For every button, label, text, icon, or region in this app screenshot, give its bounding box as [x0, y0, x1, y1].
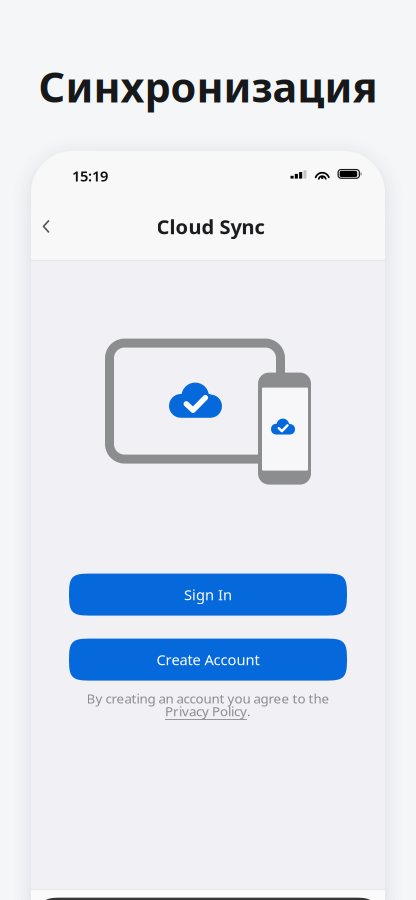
button[interactable]: Create Account [69, 639, 347, 681]
button[interactable]: Cancel [40, 898, 376, 900]
button[interactable]: Back [31, 204, 61, 248]
staticText: By creating an account you agree to the [86, 690, 329, 707]
staticText: Privacy Policy [165, 702, 247, 720]
staticText: Cloud Sync [156, 213, 264, 240]
staticText: 15:19 [72, 166, 108, 186]
staticText: Синхронизация [38, 59, 377, 114]
staticText: Create Account [156, 650, 259, 669]
staticText: . [247, 702, 251, 720]
button[interactable]: Sign In [69, 574, 347, 616]
button[interactable]: Privacy Policy [165, 702, 251, 720]
staticText: Sign In [184, 585, 232, 604]
